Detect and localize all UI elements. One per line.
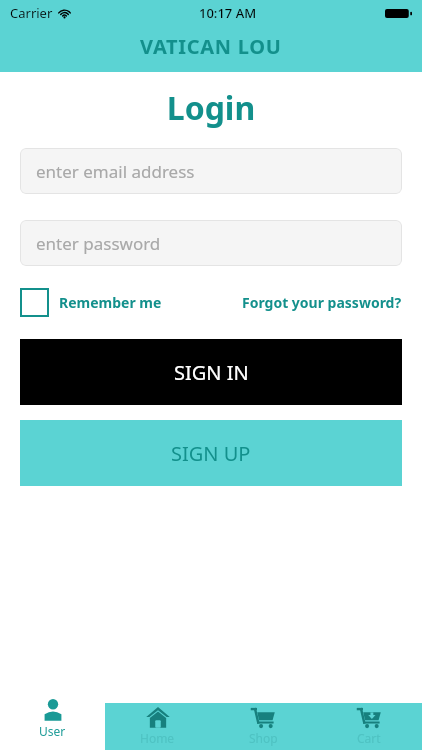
staticText: enter email address <box>36 160 195 183</box>
staticText: Remember me <box>59 293 162 312</box>
button[interactable]: Shop <box>210 690 316 750</box>
staticText: Shop <box>249 730 278 746</box>
staticText: User <box>39 723 66 739</box>
staticText: enter password <box>36 232 161 255</box>
button[interactable]: SIGN UP <box>20 420 402 486</box>
staticText: Carrier <box>10 4 53 22</box>
button[interactable]: User <box>0 690 105 750</box>
button[interactable]: Remember me <box>20 288 162 317</box>
staticText: Forgot your password? <box>242 293 402 312</box>
staticText: Home <box>140 730 175 746</box>
button[interactable]: enter password <box>20 220 402 266</box>
button[interactable]: Cart <box>316 690 422 750</box>
staticText: SIGN UP <box>171 440 251 467</box>
staticText: Cart <box>357 730 381 746</box>
button[interactable]: SIGN IN <box>20 339 402 405</box>
button[interactable]: Forgot your password? <box>242 293 402 312</box>
button[interactable]: Home <box>105 690 210 750</box>
staticText: 10:17 AM <box>199 4 257 22</box>
button[interactable]: enter email address <box>20 148 402 194</box>
staticText: SIGN IN <box>174 359 249 386</box>
staticText: VATICAN LOU <box>140 33 282 60</box>
staticText: Login <box>0 86 422 130</box>
